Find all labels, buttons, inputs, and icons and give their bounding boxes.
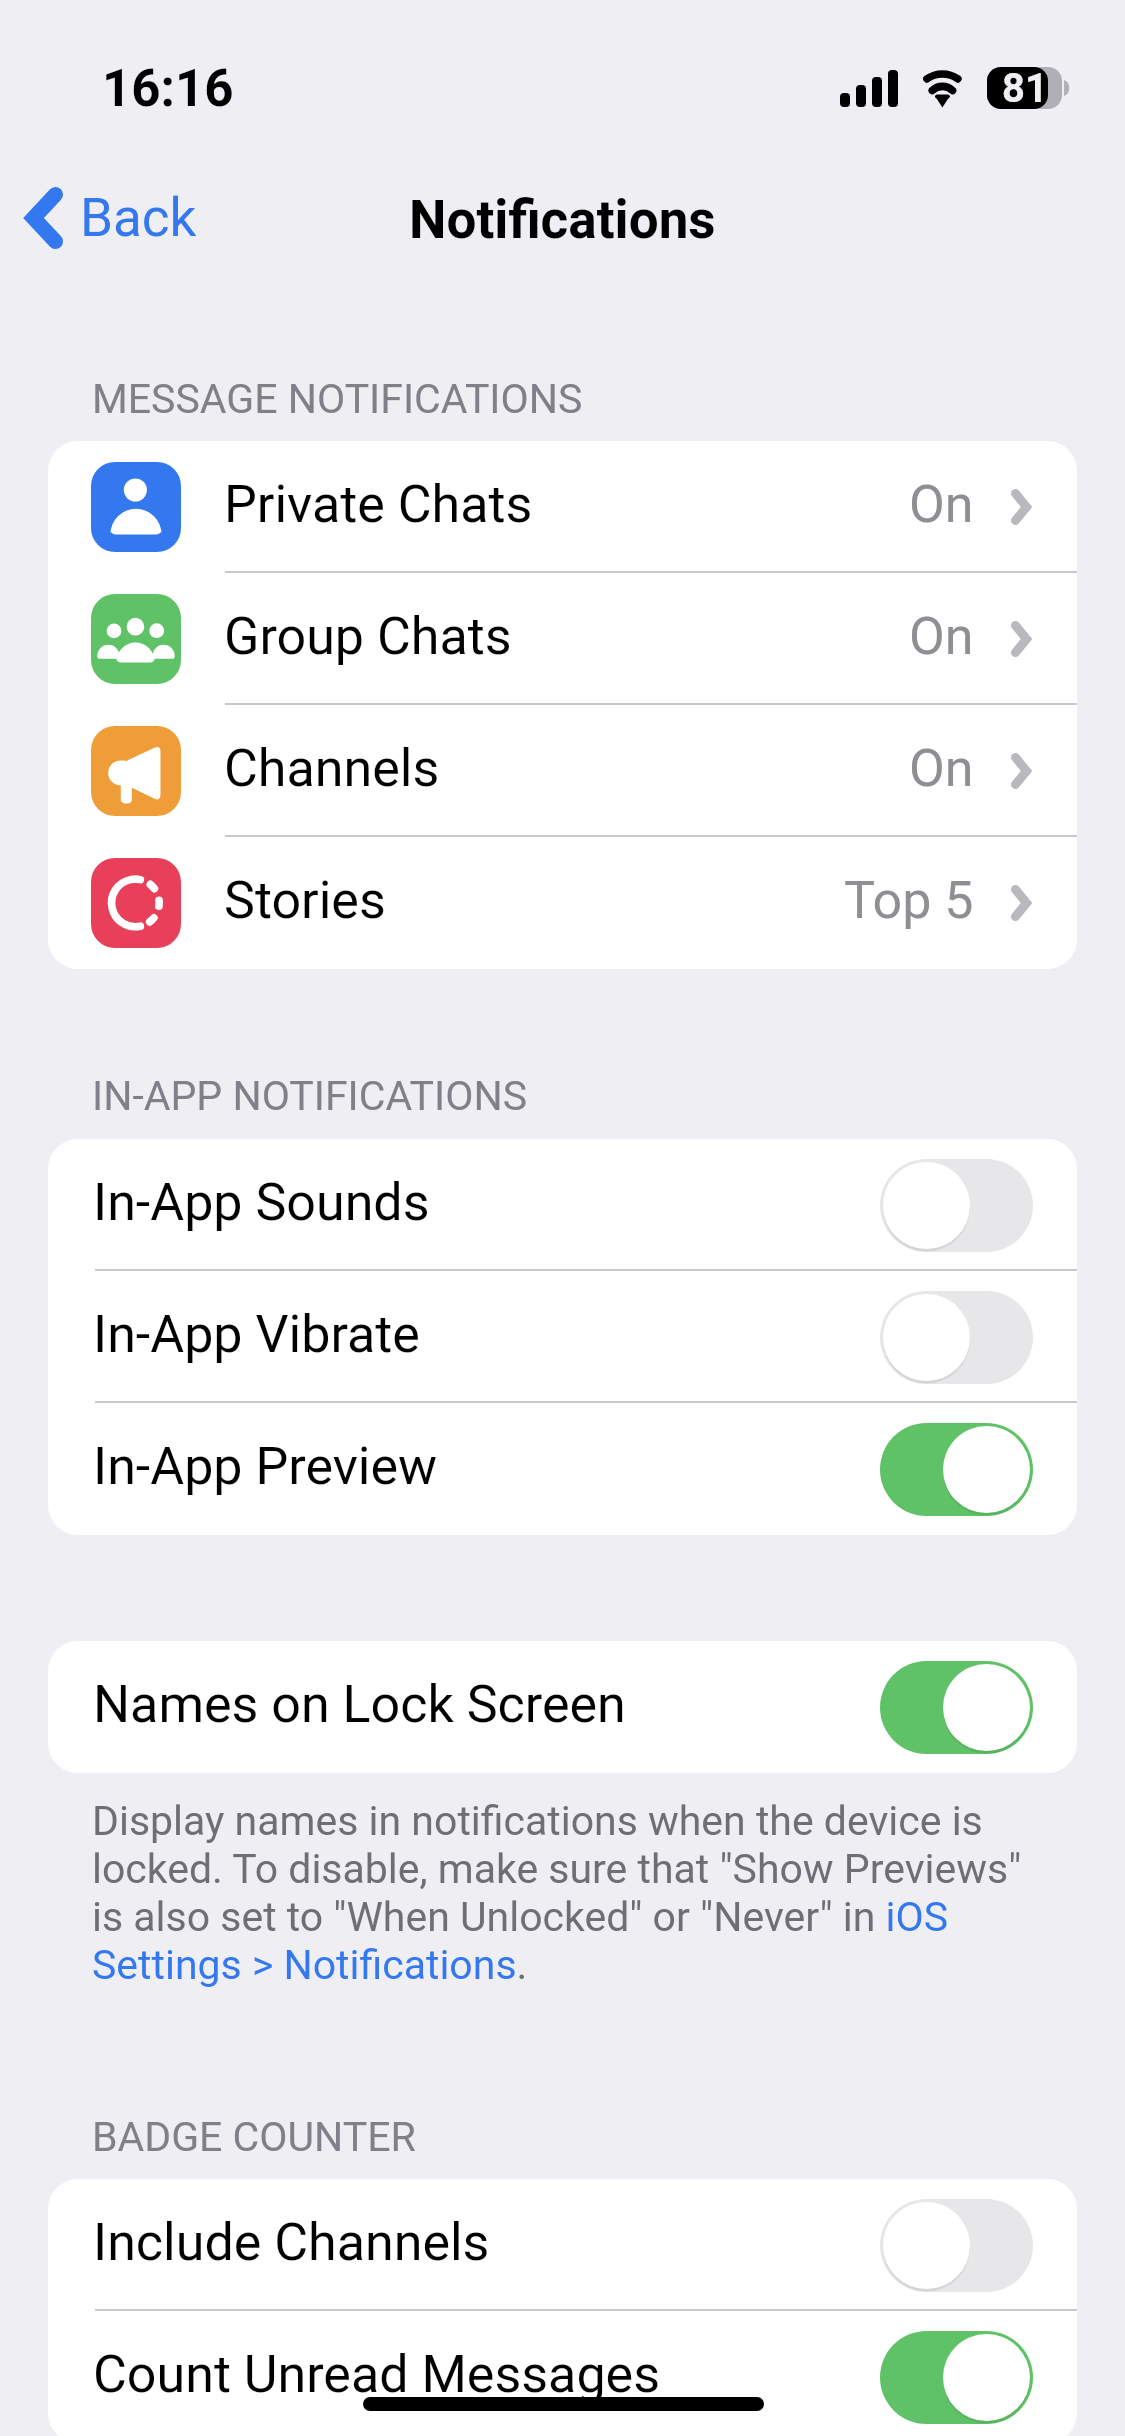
staticText: 16:16 bbox=[102, 59, 234, 119]
staticText: Count Unread Messages bbox=[93, 2344, 660, 2405]
button[interactable]: Disabled bbox=[880, 1159, 1033, 1252]
staticText: Back bbox=[80, 187, 197, 249]
staticText: Private Chats bbox=[224, 474, 533, 535]
staticText: In-App Vibrate bbox=[93, 1304, 420, 1365]
button[interactable]: Enabled bbox=[880, 2331, 1033, 2424]
button[interactable]: Disabled bbox=[880, 1291, 1033, 1384]
button[interactable]: Back bbox=[14, 173, 213, 263]
staticText: In-App Sounds bbox=[93, 1172, 430, 1233]
button[interactable]: Stories bbox=[48, 837, 1077, 969]
button[interactable]: Channels bbox=[48, 705, 1077, 837]
staticText: IN-APP NOTIFICATIONS bbox=[92, 1072, 527, 1120]
staticText: Names on Lock Screen bbox=[93, 1674, 626, 1735]
button[interactable]: Include Channels bbox=[48, 2179, 1077, 2311]
staticText: MESSAGE NOTIFICATIONS bbox=[92, 375, 583, 423]
button[interactable]: Disabled bbox=[880, 2199, 1033, 2292]
staticText: On bbox=[909, 606, 974, 667]
button[interactable]: Private Chats bbox=[48, 441, 1077, 573]
staticText: 81 bbox=[1002, 65, 1048, 112]
button[interactable]: In-App Preview bbox=[48, 1403, 1077, 1535]
button[interactable]: Group Chats bbox=[48, 573, 1077, 705]
staticText: Notifications bbox=[409, 189, 716, 251]
staticText: In-App Preview bbox=[93, 1436, 438, 1497]
staticText: BADGE COUNTER bbox=[92, 2113, 416, 2161]
button[interactable]: In-App Sounds bbox=[48, 1139, 1077, 1271]
button[interactable]: Names on Lock Screen bbox=[48, 1641, 1077, 1773]
button[interactable]: Enabled bbox=[880, 1423, 1033, 1516]
staticText: Group Chats bbox=[224, 606, 512, 667]
button[interactable]: Enabled bbox=[880, 1661, 1033, 1754]
staticText: On bbox=[909, 738, 974, 799]
staticText: Stories bbox=[224, 870, 386, 931]
staticText: Channels bbox=[224, 738, 440, 799]
staticText: Include Channels bbox=[93, 2212, 490, 2273]
button[interactable]: Count Unread Messages bbox=[48, 2311, 1077, 2436]
button[interactable]: In-App Vibrate bbox=[48, 1271, 1077, 1403]
staticText: On bbox=[909, 474, 974, 535]
staticText: Top 5 bbox=[844, 870, 974, 931]
staticText: Display names in notifications when the … bbox=[92, 1797, 1037, 1989]
